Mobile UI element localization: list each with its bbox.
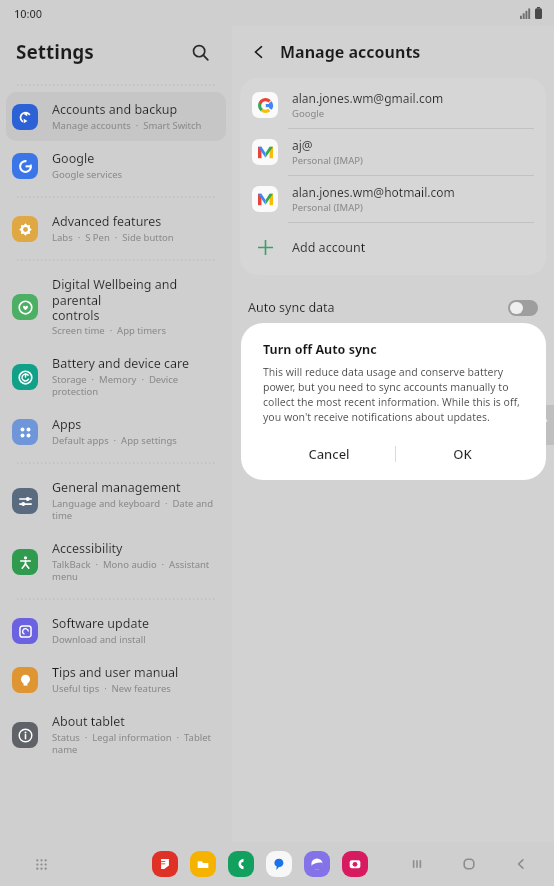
button[interactable]: All apps xyxy=(28,851,54,877)
button[interactable]: Accessibility xyxy=(6,531,226,592)
staticText: Tips and user manual xyxy=(52,664,179,681)
button[interactable]: camera xyxy=(342,851,368,877)
button[interactable]: Google xyxy=(6,141,226,190)
button[interactable]: phone xyxy=(228,851,254,877)
staticText: Accounts and backup xyxy=(52,101,178,118)
staticText: About tablet xyxy=(52,713,125,730)
button[interactable]: Apps xyxy=(6,407,226,456)
staticText: alan.jones.wm@gmail.com xyxy=(292,90,444,106)
staticText: Language and keyboard · Date and time xyxy=(52,497,213,522)
staticText: Storage · Memory · Device protection xyxy=(52,373,179,398)
staticText: Labs · S Pen · Side button xyxy=(52,231,174,244)
staticText: TalkBack · Mono audio · Assistant menu xyxy=(52,558,210,583)
staticText: Status · Legal information · Tablet name xyxy=(52,731,212,756)
staticText: Download and install xyxy=(52,633,146,646)
button[interactable]: Tips and user manual xyxy=(6,655,226,704)
button[interactable]: Advanced features xyxy=(6,204,226,253)
button[interactable]: General management xyxy=(6,470,226,531)
staticText: Turn off Auto sync xyxy=(263,341,377,358)
staticText: aj@ xyxy=(292,137,313,153)
button[interactable]: browser xyxy=(304,851,330,877)
staticText: Useful tips · New features xyxy=(52,682,171,695)
staticText: Google xyxy=(292,107,325,120)
staticText: Cancel xyxy=(308,445,350,463)
button[interactable]: folder xyxy=(190,851,216,877)
staticText: Apps xyxy=(52,416,82,433)
staticText: Battery and device care xyxy=(52,355,190,372)
button[interactable]: Back xyxy=(508,851,534,877)
staticText: Personal (IMAP) xyxy=(292,201,363,214)
button[interactable]: OK xyxy=(396,434,528,474)
staticText: 10:00 xyxy=(14,6,43,21)
staticText: Manage accounts xyxy=(280,41,421,63)
button[interactable]: Cancel xyxy=(263,434,395,474)
staticText: General management xyxy=(52,479,181,496)
staticText: Manage accounts · Smart Switch xyxy=(52,119,202,132)
button[interactable]: msg xyxy=(266,851,292,877)
button[interactable]: Edge panel xyxy=(529,405,554,445)
button[interactable]: alan.jones.wm@gmail.com xyxy=(248,82,538,128)
staticText: Software update xyxy=(52,615,149,632)
staticText: Screen time · App timers xyxy=(52,324,166,337)
button[interactable]: Add account xyxy=(248,223,538,271)
button[interactable]: Digital Wellbeing and parental controls xyxy=(6,267,226,346)
button[interactable]: note xyxy=(152,851,178,877)
staticText: Default apps · App settings xyxy=(52,434,177,447)
staticText: Digital Wellbeing and parental controls xyxy=(52,276,218,323)
button[interactable]: Battery and device care xyxy=(6,346,226,407)
staticText: Add account xyxy=(292,239,366,256)
staticText: Settings xyxy=(16,39,94,65)
staticText: Auto sync data xyxy=(248,299,335,316)
staticText: Personal (IMAP) xyxy=(292,154,363,167)
button[interactable]: Accounts and backup xyxy=(6,92,226,141)
staticText: OK xyxy=(453,445,472,463)
staticText: Google xyxy=(52,150,95,167)
button[interactable]: Back xyxy=(244,37,274,67)
button[interactable]: Search xyxy=(184,36,216,68)
button[interactable]: alan.jones.wm@hotmail.com xyxy=(248,176,538,222)
button[interactable]: Software update xyxy=(6,606,226,655)
staticText: alan.jones.wm@hotmail.com xyxy=(292,184,455,200)
button[interactable]: Home xyxy=(456,851,482,877)
staticText: Google services xyxy=(52,168,123,181)
button[interactable]: aj@ xyxy=(248,129,538,175)
staticText: Accessibility xyxy=(52,540,123,557)
staticText: Advanced features xyxy=(52,213,162,230)
button[interactable]: About tablet xyxy=(6,704,226,765)
button[interactable]: Recents xyxy=(404,851,430,877)
button[interactable]: Auto sync data xyxy=(232,285,554,330)
staticText: This will reduce data usage and conserve… xyxy=(263,365,528,424)
